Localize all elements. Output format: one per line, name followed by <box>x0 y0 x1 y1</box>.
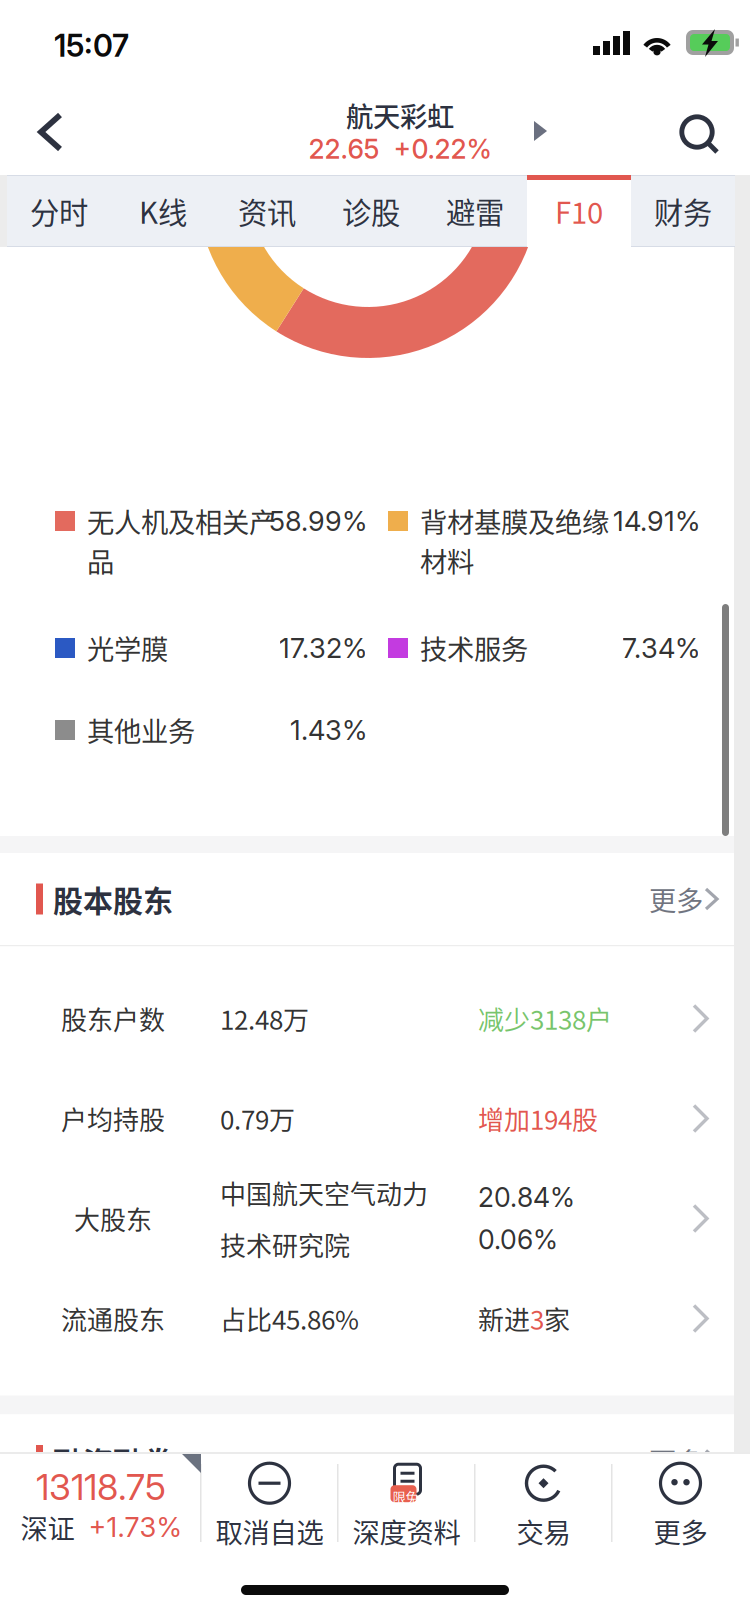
button[interactable]: Play <box>520 104 574 158</box>
staticText: 其他业务 <box>87 710 195 750</box>
staticText: 流通股东 <box>61 1300 165 1337</box>
button[interactable]: 限免 <box>338 1455 475 1555</box>
staticText: 7.34% <box>622 631 700 665</box>
staticText: 20.84% <box>478 1181 575 1213</box>
staticText: 0.79万 <box>220 1100 295 1137</box>
button[interactable]: 避雷 <box>423 175 527 247</box>
staticText: 增加194股 <box>478 1100 598 1137</box>
staticText: 资讯 <box>238 190 296 232</box>
staticText: F10 <box>555 190 603 232</box>
staticText: 1.43% <box>290 713 367 747</box>
staticText: +1.73% <box>88 1510 181 1544</box>
staticText: 12.48万 <box>220 1000 309 1037</box>
button[interactable]: F10 <box>527 175 631 247</box>
staticText: 17.32% <box>279 631 367 665</box>
button[interactable]: 取消自选 <box>201 1455 338 1555</box>
staticText: 减少3138户 <box>478 1000 612 1037</box>
staticText: 技术服务 <box>420 628 528 668</box>
staticText: 深度资料 <box>352 1511 460 1551</box>
button[interactable]: 诊股 <box>319 175 423 247</box>
staticText: 更多 <box>649 1441 703 1480</box>
staticText: 户均持股 <box>61 1100 165 1137</box>
staticText: 限免 <box>392 1487 418 1506</box>
button[interactable]: 流通股东 <box>0 1268 734 1368</box>
button[interactable]: 更多 <box>625 857 734 941</box>
staticText: 0.06% <box>478 1223 558 1256</box>
staticText: 分时 <box>30 190 88 232</box>
staticText: 家 <box>544 1300 570 1337</box>
staticText: 3 <box>530 1300 544 1337</box>
staticText: 光学膜 <box>87 628 168 668</box>
staticText: 避雷 <box>446 190 504 232</box>
button[interactable]: 更多 <box>612 1455 749 1555</box>
button[interactable]: 资讯 <box>215 175 319 247</box>
staticText: 技术研究院 <box>220 1225 350 1263</box>
button[interactable]: K线 <box>111 175 215 247</box>
staticText: 更多 <box>649 879 703 919</box>
button[interactable]: 分时 <box>7 175 111 247</box>
staticText: 融资融券 <box>53 1439 173 1482</box>
button[interactable]: 大股东 <box>0 1168 734 1268</box>
staticText: 15:07 <box>54 27 129 64</box>
staticText: 22.65 +0.22% <box>308 133 491 165</box>
staticText: 交易 <box>516 1511 570 1551</box>
button[interactable]: 财务 <box>631 175 735 247</box>
button[interactable]: 更多 <box>625 1419 734 1502</box>
staticText: 诊股 <box>342 190 400 232</box>
button[interactable]: Back <box>0 88 100 175</box>
button[interactable]: 户均持股 <box>0 1068 734 1168</box>
staticText: 深证 <box>20 1507 74 1547</box>
staticText: 13118.75 <box>36 1465 166 1509</box>
button[interactable]: 13118.75 <box>1 1455 201 1555</box>
staticText: 大股东 <box>74 1200 152 1237</box>
staticText: 财务 <box>654 190 712 232</box>
staticText: 更多 <box>653 1511 707 1551</box>
staticText: 股东户数 <box>61 1000 165 1037</box>
staticText: 占比45.86% <box>220 1300 359 1337</box>
staticText: 中国航天空气动力 <box>220 1174 428 1211</box>
staticText: 航天彩虹 <box>346 95 454 135</box>
staticText: 背材基膜及绝缘材料 <box>420 501 609 580</box>
button[interactable]: Search <box>659 98 737 176</box>
staticText: 股本股东 <box>53 877 173 921</box>
staticText: 58.99% <box>269 504 367 538</box>
button[interactable]: 交易 <box>475 1455 612 1555</box>
staticText: 取消自选 <box>215 1511 323 1551</box>
button[interactable]: 股东户数 <box>0 968 734 1068</box>
staticText: 无人机及相关产品 <box>87 501 276 580</box>
staticText: 14.91% <box>613 504 700 538</box>
staticText: 新进 <box>478 1300 530 1337</box>
staticText: K线 <box>139 190 187 232</box>
